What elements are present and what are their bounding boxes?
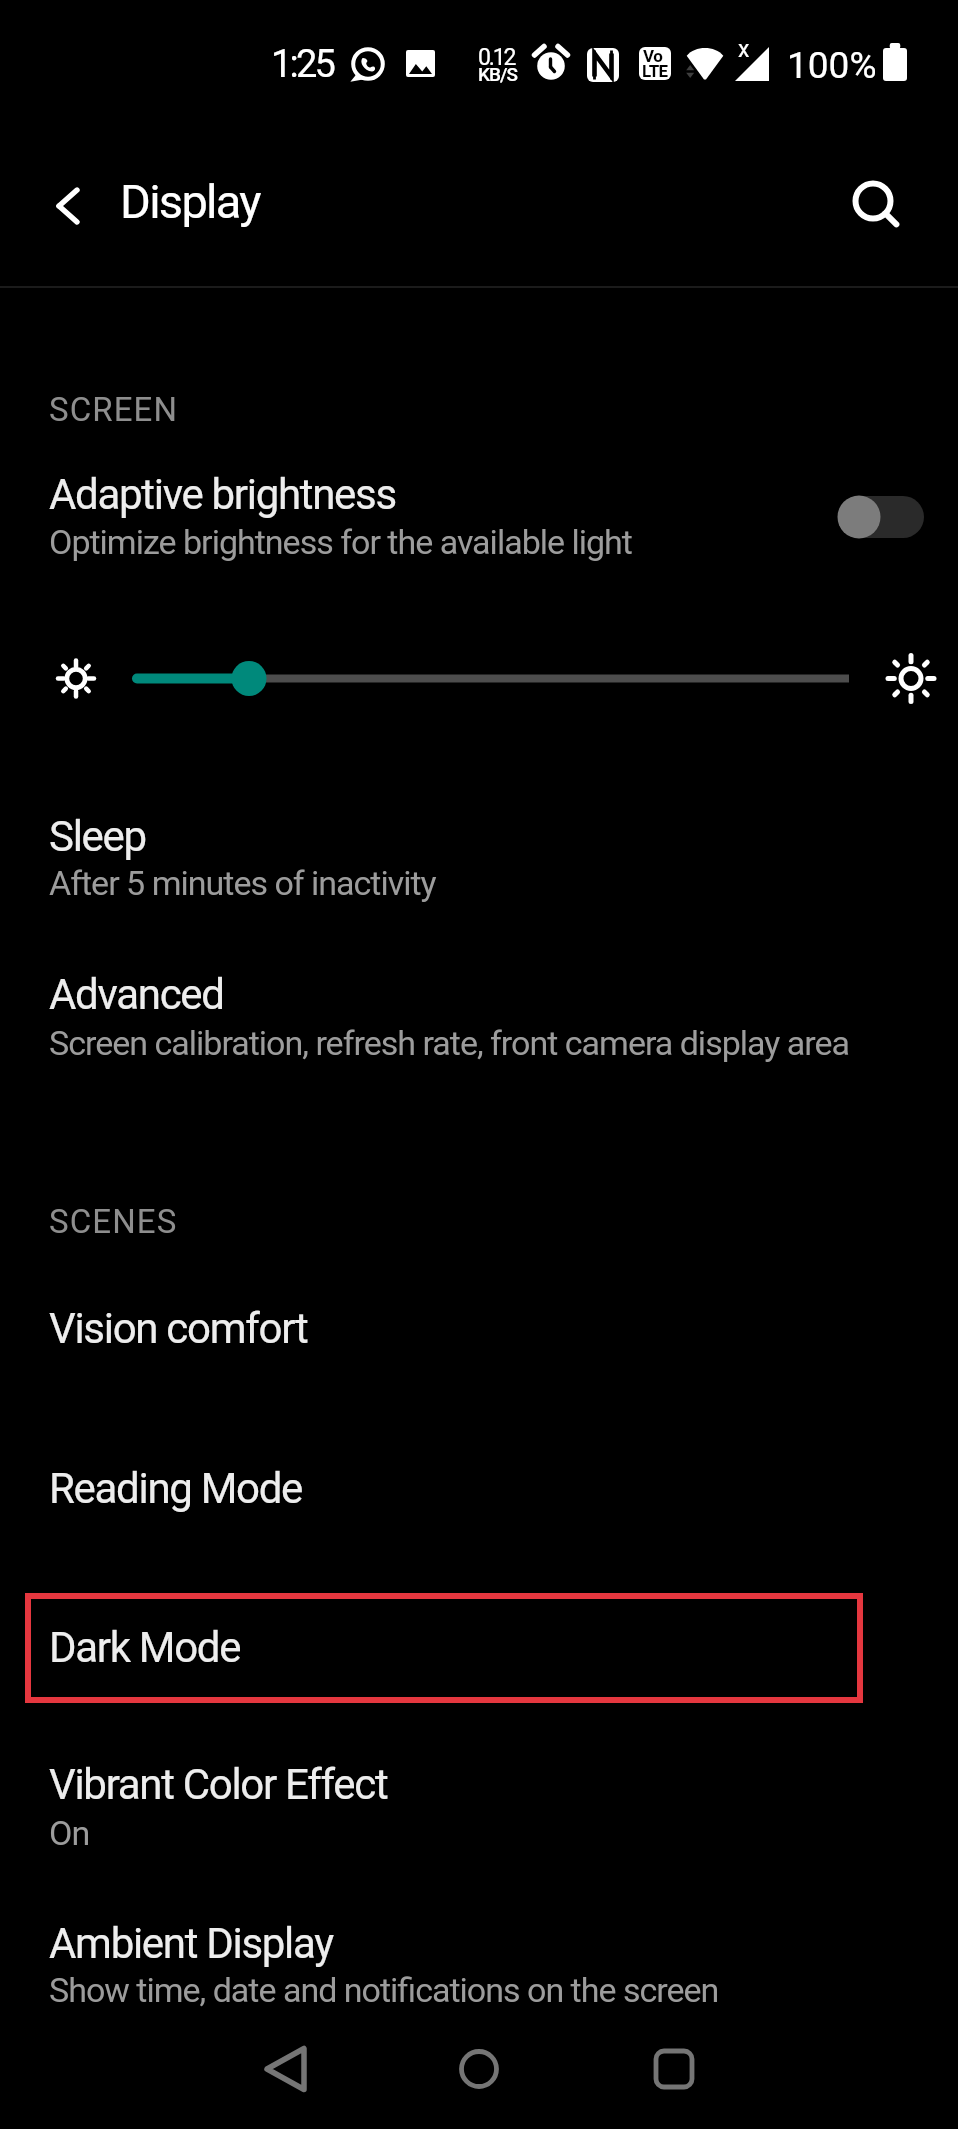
- staticText: Vibrant Color Effect: [49, 1760, 388, 1809]
- button[interactable]: [0, 1740, 958, 1850]
- staticText: SCREEN: [49, 390, 179, 429]
- button[interactable]: [0, 948, 958, 1063]
- button[interactable]: Adaptive brightness: [838, 496, 924, 538]
- staticText: KB/S: [478, 63, 517, 85]
- staticText: Show time, date and notifications on the…: [49, 1970, 719, 2010]
- staticText: Adaptive brightness: [49, 470, 396, 519]
- staticText: 1:25: [271, 42, 334, 87]
- staticText: Reading Mode: [49, 1464, 303, 1513]
- staticText: Vision comfort: [49, 1304, 308, 1353]
- button[interactable]: [0, 1905, 958, 2020]
- button[interactable]: [0, 1450, 958, 1522]
- button[interactable]: Back: [30, 170, 102, 242]
- staticText: On: [49, 1813, 90, 1853]
- button[interactable]: [0, 795, 958, 910]
- staticText: Display: [120, 174, 260, 229]
- button[interactable]: Brightness: [0, 640, 958, 720]
- button[interactable]: Back: [225, 2009, 345, 2129]
- staticText: Dark Mode: [49, 1623, 241, 1672]
- staticText: LTE: [642, 61, 668, 81]
- staticText: Optimize brightness for the available li…: [49, 522, 632, 562]
- staticText: 0.12: [478, 44, 515, 71]
- button[interactable]: [0, 1290, 958, 1362]
- button[interactable]: [0, 455, 958, 570]
- staticText: 100%: [787, 44, 877, 87]
- staticText: Vo: [643, 46, 663, 66]
- button[interactable]: Search: [838, 170, 910, 242]
- staticText: x: [738, 36, 750, 63]
- staticText: Ambient Display: [49, 1919, 333, 1968]
- button[interactable]: Recent apps: [614, 2009, 734, 2129]
- staticText: Advanced: [49, 970, 224, 1019]
- staticText: After 5 minutes of inactivity: [49, 863, 436, 903]
- staticText: Sleep: [49, 812, 146, 861]
- button[interactable]: Dark Mode: [25, 1593, 863, 1703]
- staticText: Screen calibration, refresh rate, front …: [49, 1023, 850, 1063]
- staticText: SCENES: [49, 1202, 178, 1241]
- button[interactable]: Home: [419, 2009, 539, 2129]
